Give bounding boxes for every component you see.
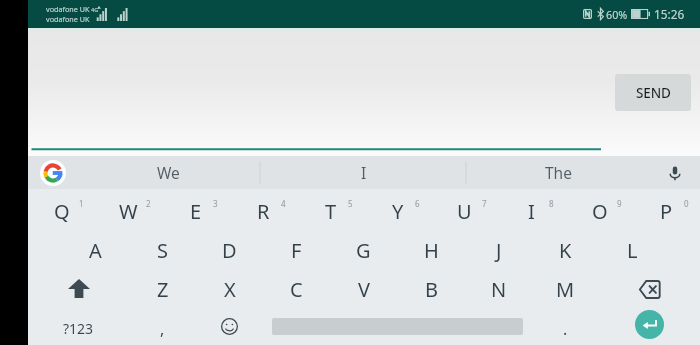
button[interactable]: F xyxy=(263,228,330,267)
staticText: C xyxy=(290,276,303,303)
staticText: We xyxy=(157,162,180,183)
button[interactable]: J xyxy=(465,228,532,267)
staticText: V xyxy=(358,276,370,303)
staticText: U xyxy=(457,198,472,225)
button[interactable]: Backspace xyxy=(599,267,700,306)
button[interactable]: E xyxy=(162,189,229,228)
staticText: I xyxy=(361,162,367,183)
button[interactable]: The xyxy=(465,156,651,189)
staticText: 5 xyxy=(348,198,353,209)
staticText: 15:26 xyxy=(654,6,685,22)
button[interactable]: V xyxy=(330,267,397,306)
button[interactable]: C xyxy=(263,267,330,306)
staticText: 4 xyxy=(281,198,286,209)
button[interactable]: Emoji xyxy=(196,306,263,345)
staticText: Q xyxy=(54,198,70,225)
button[interactable]: Q xyxy=(28,189,95,228)
button[interactable]: I xyxy=(498,189,565,228)
staticText: B xyxy=(425,276,438,303)
staticText: ?123 xyxy=(63,319,94,338)
button[interactable] xyxy=(263,306,532,345)
staticText: The xyxy=(545,162,572,183)
staticText: M xyxy=(556,276,575,303)
staticText: K xyxy=(559,237,572,264)
button[interactable]: O xyxy=(566,189,633,228)
button[interactable]: X xyxy=(196,267,263,306)
button[interactable]: B xyxy=(398,267,465,306)
button[interactable]: We xyxy=(70,156,266,189)
staticText: N xyxy=(491,276,507,303)
button[interactable]: H xyxy=(398,228,465,267)
button[interactable]: ?123 xyxy=(28,306,129,345)
button[interactable]: Voice input xyxy=(660,158,690,188)
staticText: Y xyxy=(392,198,404,225)
button[interactable]: I xyxy=(260,156,467,189)
staticText: D xyxy=(222,237,237,264)
button[interactable]: Enter xyxy=(599,306,700,345)
staticText: . xyxy=(563,318,568,340)
button[interactable]: . xyxy=(532,306,599,345)
staticText: Z xyxy=(157,276,169,303)
staticText: T xyxy=(325,198,337,225)
button[interactable]: N xyxy=(465,267,532,306)
staticText: L xyxy=(627,237,638,264)
staticText: H xyxy=(424,237,439,264)
button[interactable]: U xyxy=(431,189,498,228)
button[interactable]: Z xyxy=(129,267,196,306)
staticText: R xyxy=(257,198,270,225)
staticText: 3 xyxy=(213,198,218,209)
button[interactable]: Google xyxy=(39,159,67,187)
button[interactable]: A xyxy=(62,228,129,267)
staticText: 0 xyxy=(684,198,689,209)
button[interactable]: K xyxy=(532,228,599,267)
staticText: A xyxy=(89,237,102,264)
staticText: 7 xyxy=(482,198,487,209)
staticText: X xyxy=(224,276,236,303)
staticText: G xyxy=(356,237,371,264)
button[interactable]: L xyxy=(599,228,666,267)
staticText: O xyxy=(592,198,608,225)
staticText: P xyxy=(660,198,673,225)
staticText: 6 xyxy=(415,198,420,209)
staticText: SEND xyxy=(636,84,671,102)
staticText: , xyxy=(160,318,165,340)
staticText: vodafone UK xyxy=(46,4,90,14)
button[interactable]: SEND xyxy=(615,74,691,111)
button[interactable]: D xyxy=(196,228,263,267)
button[interactable]: W xyxy=(95,189,162,228)
button[interactable]: G xyxy=(330,228,397,267)
button[interactable]: M xyxy=(532,267,599,306)
staticText: J xyxy=(496,237,502,264)
button[interactable]: , xyxy=(129,306,196,345)
staticText: 60% xyxy=(606,7,628,22)
staticText: E xyxy=(190,198,202,225)
staticText: 4G xyxy=(91,6,99,14)
staticText: F xyxy=(291,237,302,264)
button[interactable]: Y xyxy=(364,189,431,228)
staticText: vodafone UK xyxy=(46,14,90,24)
staticText: 8 xyxy=(549,198,554,209)
staticText: S xyxy=(157,237,168,264)
button[interactable]: R xyxy=(230,189,297,228)
button[interactable]: P xyxy=(633,189,700,228)
staticText: I xyxy=(528,198,535,225)
staticText: 9 xyxy=(617,198,622,209)
staticText: W xyxy=(119,198,138,225)
button[interactable]: S xyxy=(129,228,196,267)
staticText: 2 xyxy=(146,198,151,209)
button[interactable]: T xyxy=(297,189,364,228)
button[interactable]: Shift xyxy=(28,267,129,306)
staticText: 1 xyxy=(79,198,84,209)
